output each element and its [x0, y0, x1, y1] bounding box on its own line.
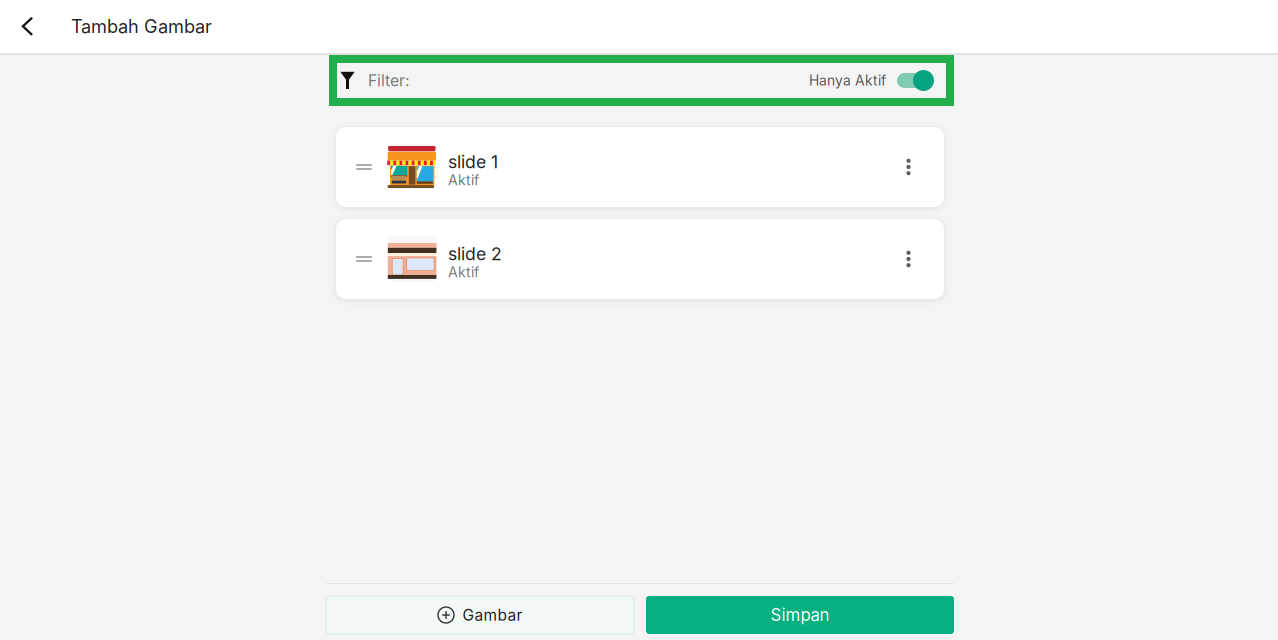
staticText: Simpan — [770, 605, 829, 625]
button[interactable]: Hanya Aktif — [897, 70, 934, 91]
staticText: Hanya Aktif — [809, 72, 886, 89]
staticText: Tambah Gambar — [71, 15, 212, 37]
button[interactable]: slide 2 — [336, 219, 944, 299]
button[interactable]: Gambar — [326, 596, 634, 634]
button[interactable]: Back — [0, 0, 55, 53]
staticText: slide 2 — [448, 243, 502, 265]
staticText: Aktif — [448, 172, 479, 189]
staticText: Gambar — [462, 606, 522, 624]
staticText: Filter: — [368, 71, 410, 90]
staticText: slide 1 — [448, 151, 498, 173]
staticText: Aktif — [448, 264, 479, 281]
button[interactable]: Simpan — [646, 596, 954, 634]
button[interactable]: slide 1 — [336, 127, 944, 207]
